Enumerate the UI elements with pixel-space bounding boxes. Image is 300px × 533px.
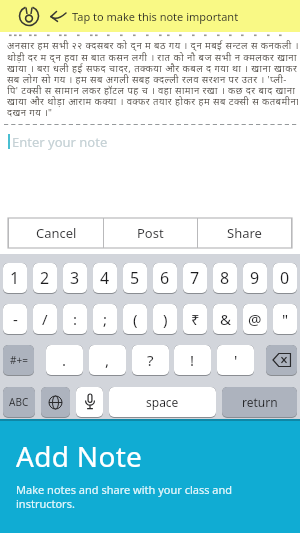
button[interactable]: @ [243, 304, 267, 335]
staticText: 0 [280, 267, 290, 289]
button[interactable]: ' [217, 345, 254, 376]
staticText: #+= [10, 353, 28, 367]
staticText: ABC [9, 395, 29, 409]
button[interactable]: - [3, 304, 27, 335]
staticText: ; [103, 309, 108, 329]
staticText: return [242, 394, 278, 410]
staticText: Share [227, 224, 262, 242]
staticText: / [42, 309, 48, 329]
button[interactable]: . [46, 345, 83, 376]
button[interactable]: 3 [63, 263, 87, 294]
button[interactable]: " [273, 304, 297, 335]
staticText: @ [248, 309, 262, 329]
staticText: ( [133, 309, 138, 329]
staticText: ₹ [191, 309, 200, 329]
button[interactable]: ; [93, 304, 117, 335]
staticText: - [13, 309, 18, 329]
staticText: Make notes and share with your class and… [16, 482, 233, 511]
button[interactable]: ₹ [183, 304, 207, 335]
button[interactable]: 6 [153, 263, 177, 294]
staticText: 2 [40, 267, 50, 289]
staticText: 1 [10, 267, 20, 289]
staticText: 3 [70, 267, 80, 289]
staticText: Tap to make this note important [72, 9, 239, 24]
staticText: ' [234, 350, 238, 370]
button[interactable]: #+= [3, 345, 34, 376]
button[interactable]: Tap to make this note important [0, 0, 300, 32]
staticText: अनसार हम सभी २२ क्दसबर को द्न म बठ गय । … [7, 39, 298, 119]
button[interactable]: return [222, 387, 297, 418]
button[interactable] [266, 345, 297, 376]
button[interactable]: , [89, 345, 126, 376]
button[interactable]: Share [198, 218, 291, 248]
button[interactable]: Add Note [0, 419, 300, 533]
button[interactable]: ? [132, 345, 169, 376]
staticText: Add Note [16, 437, 143, 475]
button[interactable]: 8 [213, 263, 237, 294]
button[interactable]: 4 [93, 263, 117, 294]
button[interactable]: Post [104, 218, 197, 248]
staticText: 5 [130, 267, 140, 289]
button[interactable]: 2 [33, 263, 57, 294]
staticText: ) [163, 309, 168, 329]
button[interactable]: ! [174, 345, 211, 376]
button[interactable]: Enter your note [0, 133, 300, 150]
staticText: Post [137, 224, 164, 242]
button[interactable]: 0 [273, 263, 297, 294]
staticText: Enter your note [12, 133, 108, 150]
staticText: 4 [100, 267, 110, 289]
button[interactable] [41, 387, 70, 418]
button[interactable]: 7 [183, 263, 207, 294]
button[interactable]: 9 [243, 263, 267, 294]
staticText: " [282, 309, 289, 329]
staticText: : [73, 309, 78, 329]
staticText: . [62, 350, 67, 370]
button[interactable]: Cancel [9, 218, 103, 248]
button[interactable] [76, 387, 103, 418]
staticText: 7 [190, 267, 200, 289]
staticText: Cancel [36, 224, 77, 242]
button[interactable]: ABC [3, 387, 35, 418]
staticText: ? [147, 350, 154, 370]
staticText: 9 [250, 267, 260, 289]
button[interactable]: & [213, 304, 237, 335]
staticText: & [220, 309, 231, 329]
staticText: ! [190, 350, 195, 370]
staticText: 8 [220, 267, 230, 289]
button[interactable]: : [63, 304, 87, 335]
button[interactable]: ( [123, 304, 147, 335]
staticText: space [146, 394, 179, 410]
staticText: 6 [160, 267, 170, 289]
staticText: , [105, 350, 110, 370]
button[interactable]: / [33, 304, 57, 335]
button[interactable]: ) [153, 304, 177, 335]
button[interactable]: space [109, 387, 216, 418]
button[interactable]: 5 [123, 263, 147, 294]
button[interactable]: 1 [3, 263, 27, 294]
